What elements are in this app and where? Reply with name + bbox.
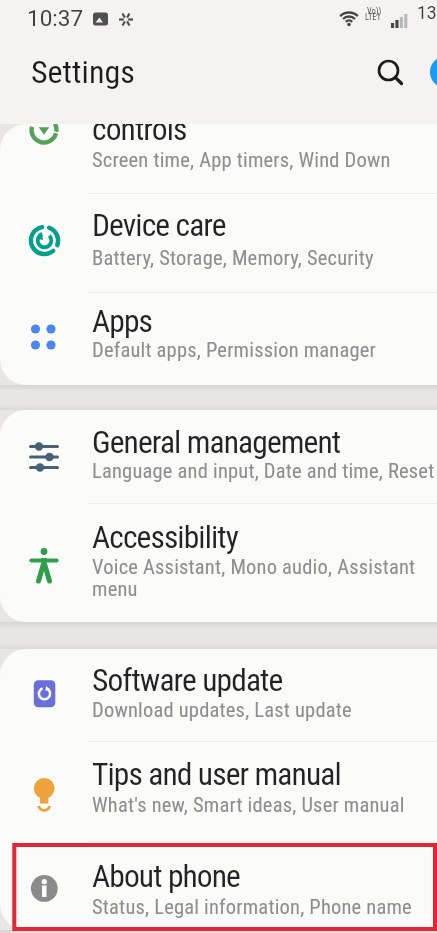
button[interactable] (372, 54, 406, 88)
staticText: Device care (92, 207, 226, 244)
button[interactable]: Software update (0, 649, 437, 741)
staticText: Default apps, Permission manager (92, 338, 377, 362)
button[interactable]: About phone (0, 841, 437, 930)
staticText: 13 (417, 3, 437, 24)
staticText: Settings (31, 53, 135, 91)
staticText: Voice Assistant, Mono audio, Assistant (92, 555, 416, 579)
staticText: controls (92, 124, 187, 148)
staticText: About phone (92, 858, 240, 895)
staticText: Status, Legal information, Phone name (92, 895, 412, 919)
staticText: Vo)) (367, 6, 382, 16)
staticText: Apps (92, 303, 152, 340)
button[interactable] (430, 56, 437, 88)
staticText: 10:37 (27, 5, 84, 31)
staticText: Battery, Storage, Memory, Security (92, 246, 374, 270)
staticText: Language and input, Date and time, Reset (92, 459, 435, 483)
staticText: Download updates, Last update (92, 698, 352, 722)
staticText: General management (92, 424, 341, 461)
button[interactable]: Apps (0, 292, 437, 385)
staticText: Accessibility (92, 519, 238, 556)
button[interactable]: General management (0, 410, 437, 502)
staticText: Tips and user manual (92, 756, 341, 793)
button[interactable]: controls (0, 124, 437, 193)
staticText: LTE1 (365, 12, 381, 22)
button[interactable]: Accessibility (0, 503, 437, 622)
button[interactable]: Tips and user manual (0, 741, 437, 841)
staticText: Software update (92, 662, 283, 699)
button[interactable]: Device care (0, 193, 437, 292)
staticText: Screen time, App timers, Wind Down (92, 148, 391, 172)
staticText: What's new, Smart ideas, User manual (92, 793, 405, 817)
staticText: menu (92, 577, 138, 601)
